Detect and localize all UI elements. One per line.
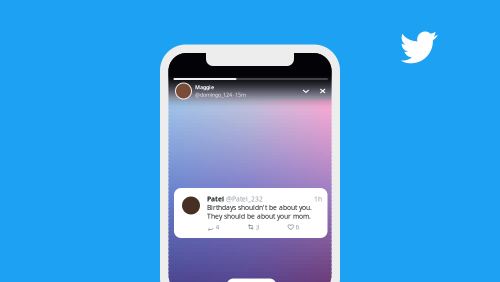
button[interactable]: Like xyxy=(287,223,327,231)
staticText: @Patel_232 xyxy=(224,195,263,203)
staticText: @domingo_124 · 15m xyxy=(195,91,246,98)
staticText: Maggie xyxy=(195,84,214,91)
button[interactable]: Retweet xyxy=(247,223,287,231)
staticText: 3 xyxy=(255,223,259,231)
button[interactable]: Collapse fleet xyxy=(300,85,311,96)
staticText: Patel xyxy=(207,195,224,203)
staticText: 4 xyxy=(215,223,219,231)
staticText: 1h xyxy=(314,195,322,203)
button[interactable]: Twitter xyxy=(396,28,440,67)
staticText: Birthdays shouldn't be about you. They s… xyxy=(207,203,312,221)
button[interactable]: Reply xyxy=(207,223,247,231)
button[interactable]: Close fleet xyxy=(317,86,328,96)
staticText: 6 xyxy=(295,223,299,231)
button[interactable]: Patel xyxy=(174,188,327,238)
